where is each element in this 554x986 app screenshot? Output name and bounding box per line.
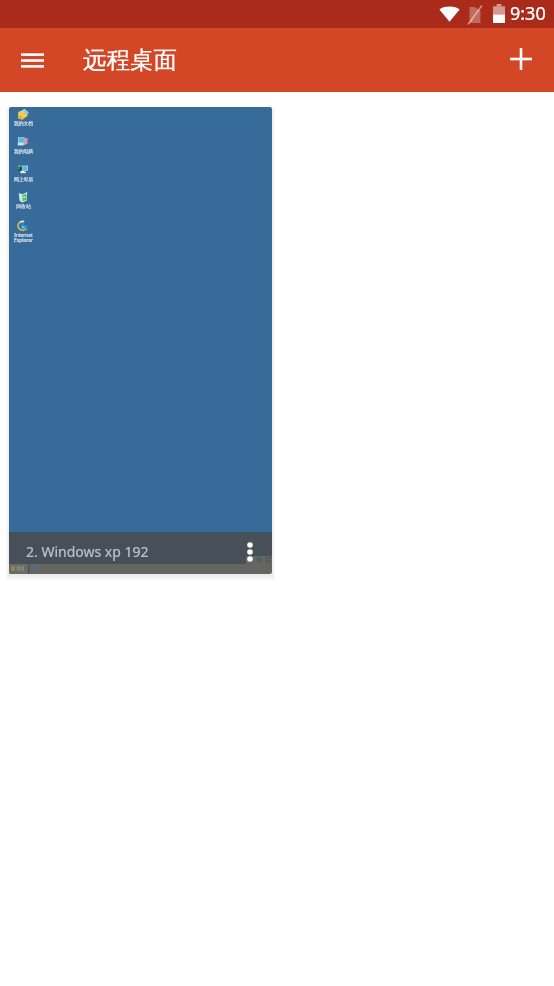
button[interactable]: 我的文档 <box>9 107 272 574</box>
staticText: 回收站 <box>9 203 43 209</box>
button[interactable]: Open navigation drawer <box>10 38 54 82</box>
staticText: 我的电脑 <box>9 148 43 154</box>
staticText: 我的文档 <box>9 120 43 126</box>
staticText: Internet Explorer <box>9 232 43 244</box>
button[interactable]: More options <box>237 535 263 561</box>
staticText: 网上邻居 <box>9 176 43 182</box>
staticText: 9:30 <box>510 1 546 26</box>
staticText: 2. Windows xp 192 <box>26 542 149 561</box>
button[interactable]: Add connection <box>499 38 543 82</box>
staticText: 远程桌面 <box>83 45 177 75</box>
